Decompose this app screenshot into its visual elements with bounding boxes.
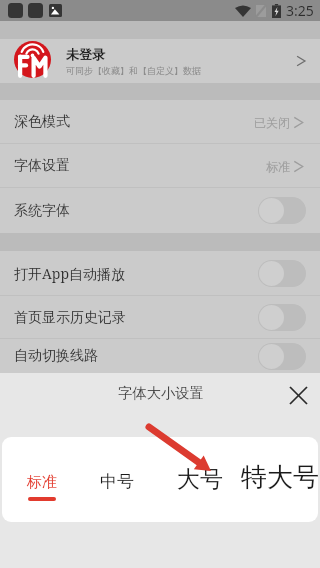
staticText: 可同步【收藏】和【自定义】数据 — [66, 65, 201, 76]
staticText: 已关闭 — [254, 115, 290, 130]
button[interactable]: 自动切换线路 — [0, 339, 320, 373]
staticText: 字体大小设置 — [118, 384, 204, 402]
staticText: 系统字体 — [14, 202, 70, 220]
staticText: 未登录 — [66, 46, 105, 62]
button[interactable]: Close — [286, 383, 310, 407]
button[interactable]: 字体设置 — [0, 144, 320, 188]
staticText: 大号 — [177, 465, 223, 494]
button[interactable]: 特大号 — [239, 437, 318, 522]
button[interactable]: 打开App自动播放 — [0, 251, 320, 296]
button[interactable]: 中号 — [81, 437, 160, 522]
staticText: 3:25 — [286, 1, 314, 20]
staticText: 深色模式 — [14, 113, 70, 131]
button[interactable]: 首页显示历史记录 — [0, 296, 320, 339]
button[interactable]: 系统字体 — [0, 188, 320, 233]
staticText: 中号 — [100, 471, 134, 492]
button[interactable]: 未登录 — [0, 39, 320, 83]
staticText: 标准 — [266, 159, 290, 174]
staticText: 特大号 — [241, 461, 318, 494]
button[interactable]: 标准 — [2, 437, 81, 522]
button[interactable]: 大号 — [160, 437, 239, 522]
staticText: 首页显示历史记录 — [14, 309, 126, 327]
staticText: 字体设置 — [14, 157, 70, 175]
staticText: 标准 — [27, 473, 57, 492]
staticText: 自动切换线路 — [14, 347, 98, 365]
staticText: 打开App自动播放 — [14, 264, 126, 283]
button[interactable]: 深色模式 — [0, 100, 320, 144]
